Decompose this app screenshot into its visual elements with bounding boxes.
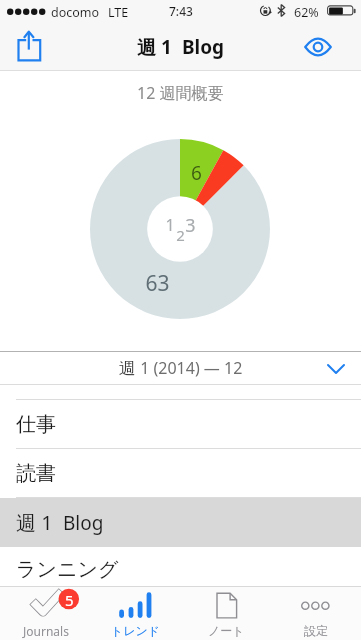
button[interactable]: 読書	[0, 449, 361, 498]
button[interactable]: トレンド	[91, 587, 181, 640]
staticText: トレンド	[111, 623, 161, 638]
staticText: 仕事	[16, 412, 56, 437]
staticText: 週 1	[16, 509, 53, 536]
staticText: 62%	[294, 4, 319, 21]
button[interactable]: 設定	[271, 587, 361, 640]
staticText: ノート	[208, 623, 245, 638]
staticText: Blog	[172, 34, 225, 60]
staticText: 12 週間概要	[137, 82, 224, 104]
staticText: 週	[119, 358, 136, 379]
staticText: 読書	[16, 461, 56, 486]
button[interactable]: 仕事	[0, 400, 361, 449]
staticText: 5	[65, 590, 74, 610]
button[interactable]: 5	[0, 587, 91, 640]
staticText: 6	[191, 160, 202, 186]
staticText: docomo	[51, 4, 100, 21]
button[interactable]: Preview	[300, 33, 336, 61]
staticText: 2	[176, 225, 185, 245]
staticText: Blog	[53, 510, 104, 536]
button[interactable]: 週	[0, 351, 361, 385]
staticText: ランニング	[16, 557, 119, 582]
button[interactable]: ランニング	[0, 547, 361, 586]
staticText: 設定	[304, 623, 328, 638]
staticText: 7:43	[169, 3, 193, 19]
staticText: 1	[165, 214, 175, 236]
button[interactable]: ノート	[181, 587, 271, 640]
staticText: 3	[185, 213, 196, 238]
staticText: 1 (2014) — 12	[136, 357, 243, 379]
staticText: LTE	[108, 4, 129, 21]
staticText: Journals	[23, 623, 69, 639]
staticText: 63	[145, 269, 170, 298]
button[interactable]: Share	[11, 25, 47, 65]
staticText: 週 1	[137, 34, 172, 60]
button[interactable]: 週 1	[0, 498, 361, 547]
